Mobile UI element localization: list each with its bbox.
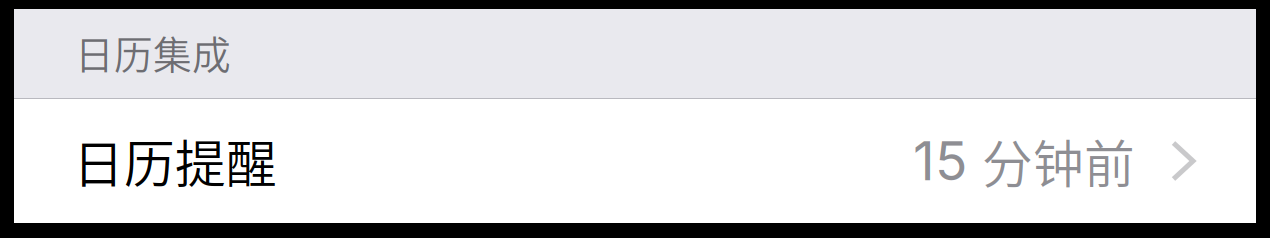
button[interactable]: 日历提醒 xyxy=(14,99,1256,223)
staticText: 日历提醒 xyxy=(73,124,277,198)
staticText: 日历集成 xyxy=(75,24,231,80)
staticText: 15 分钟前 xyxy=(913,125,1135,197)
